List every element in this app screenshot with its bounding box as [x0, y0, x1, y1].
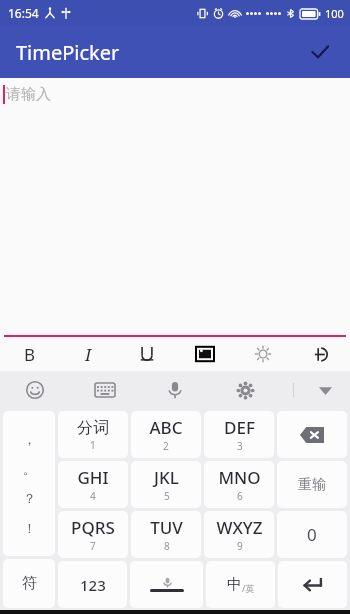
staticText: 7 [90, 539, 96, 553]
button[interactable]: Insert image [176, 337, 234, 371]
button[interactable]: Keyboard [70, 371, 140, 409]
staticText: TUV [150, 516, 183, 539]
staticText: 。 [23, 461, 36, 477]
button[interactable]: Space [130, 561, 203, 608]
button[interactable]: 符 [3, 559, 55, 608]
button[interactable]: 分词 [58, 411, 128, 458]
button[interactable]: Confirm [300, 32, 340, 72]
button[interactable]: DEF [204, 411, 274, 458]
button[interactable]: Hide keyboard [312, 377, 338, 403]
button[interactable]: 重输 [277, 461, 347, 508]
staticText: 16:54 [8, 5, 39, 21]
button[interactable]: PQRS [58, 511, 128, 558]
staticText: PQRS [71, 516, 115, 539]
staticText: 100 [325, 6, 344, 21]
staticText: 符 [22, 574, 37, 593]
button[interactable]: ， [3, 411, 55, 556]
button[interactable]: Backspace [277, 411, 347, 458]
button[interactable]: JKL [131, 461, 201, 508]
staticText: 5 [164, 489, 170, 503]
staticText: 123 [80, 575, 106, 595]
button[interactable]: Voice input [140, 371, 210, 409]
staticText: TimePicker [16, 39, 120, 66]
staticText: 4 [90, 489, 96, 503]
staticText: MNO [218, 466, 261, 489]
button[interactable]: Emoji [0, 371, 70, 409]
button[interactable]: Brightness [234, 337, 292, 371]
button[interactable]: Bold [0, 337, 59, 371]
staticText: 9 [237, 539, 243, 553]
staticText: 1 [90, 438, 96, 452]
staticText: JKL [154, 466, 179, 489]
button[interactable]: Underline [118, 337, 176, 371]
staticText: 请输入 [6, 85, 51, 104]
staticText: DEF [224, 416, 255, 439]
staticText: I [85, 343, 92, 366]
button[interactable]: Enter [278, 561, 347, 608]
staticText: 0 [307, 523, 317, 546]
button[interactable]: GHI [58, 461, 128, 508]
button[interactable]: 123 [58, 561, 127, 608]
staticText: 重输 [298, 476, 326, 494]
button[interactable]: 中 [206, 561, 275, 608]
staticText: ？ [23, 490, 36, 506]
button[interactable]: ABC [131, 411, 201, 458]
button[interactable]: Settings [210, 371, 280, 409]
button[interactable]: Italic [59, 337, 118, 371]
staticText: B [24, 343, 36, 366]
staticText: WXYZ [216, 516, 263, 539]
staticText: ， [23, 431, 36, 447]
staticText: ABC [149, 416, 183, 439]
staticText: ！ [23, 520, 36, 536]
staticText: GHI [77, 466, 109, 489]
staticText: 8 [164, 539, 170, 553]
staticText: 3 [237, 439, 243, 453]
staticText: /英 [242, 582, 255, 594]
staticText: 6 [237, 489, 243, 503]
button[interactable]: TUV [131, 511, 201, 558]
button[interactable]: Strikethrough [292, 337, 350, 371]
button[interactable]: WXYZ [204, 511, 274, 558]
button[interactable]: 0 [277, 511, 347, 558]
staticText: 中 [227, 575, 242, 594]
button[interactable]: MNO [204, 461, 274, 508]
staticText: 2 [163, 439, 169, 453]
staticText: 分词 [77, 418, 109, 438]
